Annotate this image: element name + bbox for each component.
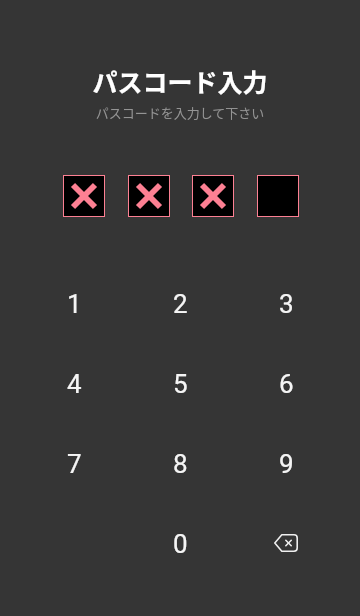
button[interactable]: 7	[21, 424, 127, 504]
staticText: 3	[279, 289, 294, 319]
button[interactable]: 6	[233, 344, 339, 424]
staticText: 8	[173, 449, 188, 479]
staticText: パスコード入力	[0, 63, 360, 99]
button[interactable]: 4	[21, 344, 127, 424]
staticText: 9	[279, 449, 294, 479]
staticText: 2	[173, 289, 188, 319]
button[interactable]	[257, 175, 299, 217]
staticText: 5	[173, 369, 188, 399]
staticText: パスコードを入力して下さい	[0, 103, 360, 122]
staticText: 7	[67, 449, 82, 479]
button[interactable]: 8	[127, 424, 233, 504]
button[interactable]: 3	[233, 264, 339, 344]
button[interactable]	[63, 175, 105, 217]
button[interactable]: Delete	[233, 504, 339, 584]
button[interactable]: 5	[127, 344, 233, 424]
button[interactable]	[192, 175, 234, 217]
staticText: 6	[279, 369, 294, 399]
staticText: 1	[67, 289, 82, 319]
staticText: 4	[67, 369, 82, 399]
button[interactable]: 9	[233, 424, 339, 504]
button[interactable]: 0	[127, 504, 233, 584]
staticText: 0	[173, 529, 188, 559]
other: Delete	[274, 534, 298, 552]
button[interactable]: 2	[127, 264, 233, 344]
button[interactable]: 1	[21, 264, 127, 344]
button[interactable]	[128, 175, 170, 217]
